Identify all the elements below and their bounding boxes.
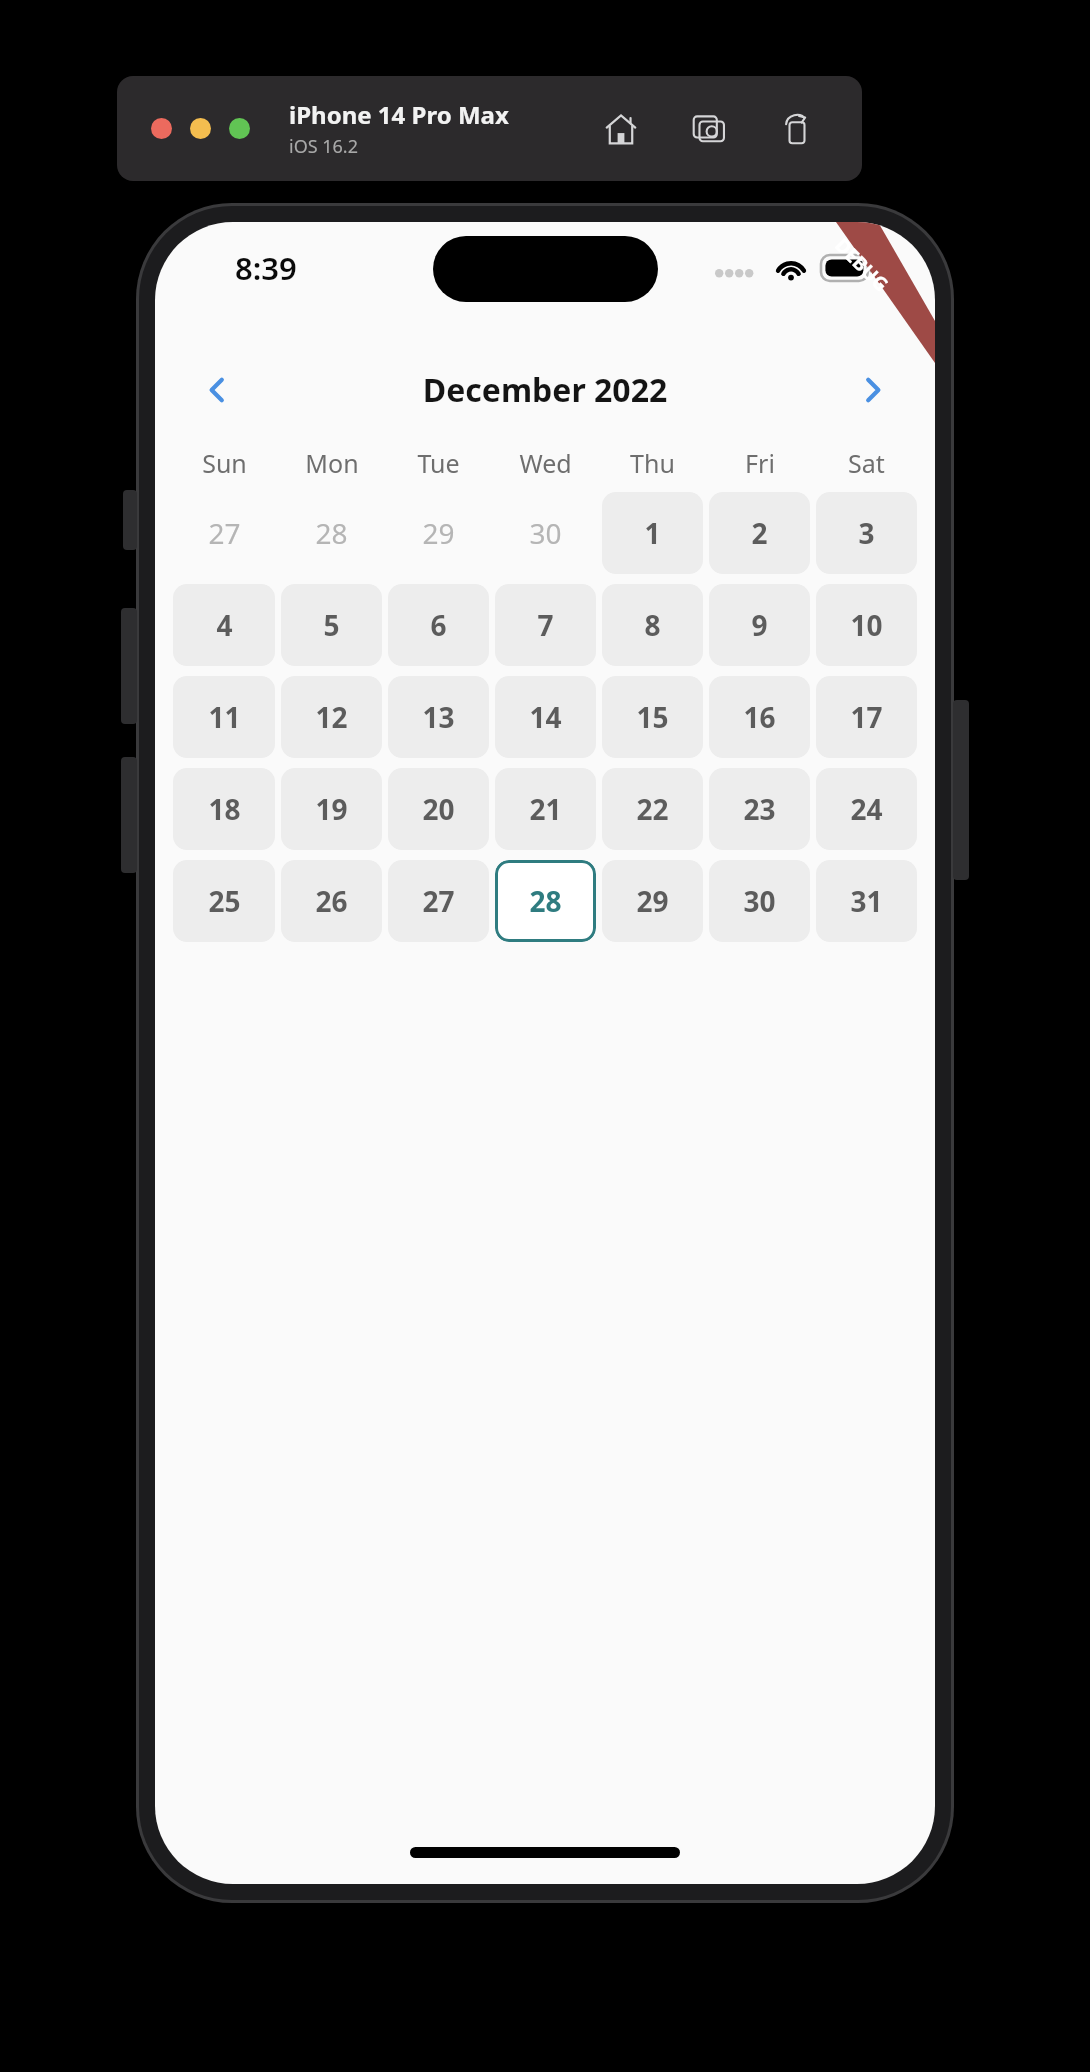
button[interactable] (229, 118, 250, 139)
staticText: 3 (858, 514, 875, 552)
staticText: Sun (202, 446, 247, 480)
button[interactable]: 20 (388, 768, 489, 850)
button[interactable]: 13 (388, 676, 489, 758)
button[interactable]: 14 (495, 676, 596, 758)
staticText: 30 (529, 514, 562, 552)
staticText: 8 (644, 606, 661, 644)
staticText: 27 (208, 514, 241, 552)
staticText: 29 (636, 882, 669, 920)
button[interactable]: 11 (173, 676, 275, 758)
button[interactable]: 21 (495, 768, 596, 850)
staticText: Sat (848, 446, 885, 480)
button[interactable] (190, 118, 211, 139)
staticText: 16 (743, 698, 776, 736)
staticText: 25 (208, 882, 241, 920)
staticText: 20 (422, 790, 455, 828)
staticText: 19 (315, 790, 348, 828)
staticText: 24 (850, 790, 883, 828)
staticText: 23 (743, 790, 776, 828)
staticText: 22 (636, 790, 669, 828)
staticText: 10 (850, 606, 883, 644)
button[interactable]: 25 (173, 860, 275, 942)
staticText: 15 (636, 698, 669, 736)
staticText: Mon (305, 446, 359, 480)
staticText: 2 (751, 514, 768, 552)
button[interactable]: 23 (709, 768, 810, 850)
button[interactable] (151, 118, 172, 139)
button[interactable]: 4 (173, 584, 275, 666)
button[interactable]: 5 (281, 584, 382, 666)
button[interactable]: 30 (709, 860, 810, 942)
staticText: Tue (417, 446, 460, 480)
button[interactable]: 2 (709, 492, 810, 574)
button[interactable]: 9 (709, 584, 810, 666)
button[interactable]: Home (600, 108, 642, 150)
staticText: 13 (422, 698, 455, 736)
staticText: 5 (323, 606, 340, 644)
staticText: iPhone 14 Pro Max (289, 98, 509, 131)
button[interactable]: 24 (816, 768, 917, 850)
staticText: 21 (529, 790, 562, 828)
button[interactable]: 29 (602, 860, 703, 942)
button[interactable]: 18 (173, 768, 275, 850)
button[interactable]: 27 (173, 492, 275, 574)
button[interactable]: Previous month (189, 362, 245, 418)
staticText: 4 (216, 606, 233, 644)
button[interactable]: 3 (816, 492, 917, 574)
staticText: 27 (422, 882, 455, 920)
button[interactable]: 31 (816, 860, 917, 942)
button[interactable]: 17 (816, 676, 917, 758)
button[interactable]: 27 (388, 860, 489, 942)
button[interactable]: Rotate (776, 108, 818, 150)
staticText: December 2022 (245, 368, 845, 412)
staticText: 7 (537, 606, 554, 644)
button[interactable]: 19 (281, 768, 382, 850)
staticText: Wed (519, 446, 572, 480)
staticText: 1 (644, 514, 661, 552)
button[interactable]: 28 (495, 860, 596, 942)
button[interactable]: 8 (602, 584, 703, 666)
button[interactable]: Silent switch (123, 490, 137, 550)
staticText: 26 (315, 882, 348, 920)
button[interactable]: Next month (845, 362, 901, 418)
button[interactable]: 6 (388, 584, 489, 666)
staticText: 14 (529, 698, 562, 736)
staticText: 28 (529, 882, 562, 920)
button[interactable]: 22 (602, 768, 703, 850)
staticText: 29 (422, 514, 455, 552)
staticText: 8:39 (235, 247, 297, 289)
button[interactable]: 26 (281, 860, 382, 942)
button[interactable]: 29 (388, 492, 489, 574)
button[interactable]: 28 (281, 492, 382, 574)
staticText: 30 (743, 882, 776, 920)
staticText: 9 (751, 606, 768, 644)
staticText: 6 (430, 606, 447, 644)
button[interactable]: 15 (602, 676, 703, 758)
staticText: iOS 16.2 (289, 134, 358, 159)
button[interactable]: 30 (495, 492, 596, 574)
button[interactable]: 7 (495, 584, 596, 666)
button[interactable]: 10 (816, 584, 917, 666)
staticText: 17 (850, 698, 883, 736)
staticText: DEBUG (829, 232, 895, 298)
button[interactable]: 12 (281, 676, 382, 758)
staticText: 31 (850, 882, 883, 920)
button[interactable]: Screenshot (688, 108, 730, 150)
staticText: 28 (315, 514, 348, 552)
staticText: 11 (208, 698, 241, 736)
button[interactable]: 1 (602, 492, 703, 574)
staticText: Fri (745, 446, 775, 480)
staticText: Thu (630, 446, 675, 480)
staticText: 18 (208, 790, 241, 828)
button[interactable]: 16 (709, 676, 810, 758)
staticText: 12 (315, 698, 348, 736)
